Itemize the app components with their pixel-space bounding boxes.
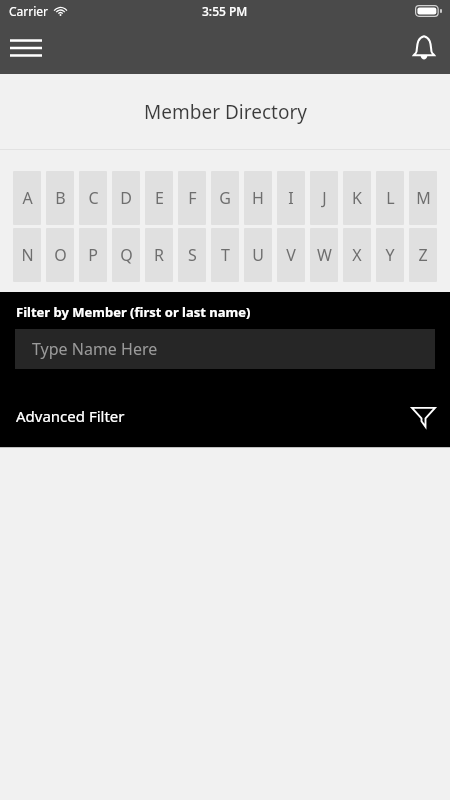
staticText: N — [21, 244, 34, 266]
staticText: O — [54, 244, 67, 266]
button[interactable]: I — [277, 171, 305, 225]
button[interactable]: J — [310, 171, 338, 225]
button[interactable]: G — [211, 171, 239, 225]
button[interactable]: Y — [376, 228, 404, 282]
staticText: H — [252, 187, 264, 209]
staticText: A — [22, 187, 33, 209]
button[interactable]: O — [46, 228, 74, 282]
button[interactable]: M — [409, 171, 437, 225]
button[interactable]: C — [79, 171, 107, 225]
staticText: R — [154, 244, 164, 266]
staticText: L — [386, 187, 395, 209]
button[interactable]: Menu — [0, 22, 52, 74]
staticText: Filter by Member (first or last name) — [16, 303, 251, 321]
button[interactable]: H — [244, 171, 272, 225]
button[interactable]: X — [343, 228, 371, 282]
staticText: E — [155, 187, 164, 209]
staticText: P — [88, 244, 98, 266]
staticText: Z — [418, 244, 428, 266]
staticText: 3:55 PM — [202, 3, 248, 19]
staticText: G — [219, 187, 231, 209]
button[interactable]: U — [244, 228, 272, 282]
button[interactable]: F — [178, 171, 206, 225]
button[interactable]: N — [13, 228, 41, 282]
button[interactable]: L — [376, 171, 404, 225]
button[interactable]: K — [343, 171, 371, 225]
button[interactable]: P — [79, 228, 107, 282]
button[interactable]: Q — [112, 228, 140, 282]
staticText: Member Directory — [144, 99, 307, 125]
staticText: S — [188, 244, 197, 266]
button[interactable]: Notifications — [398, 22, 450, 74]
staticText: K — [352, 187, 362, 209]
staticText: V — [286, 244, 296, 266]
button[interactable]: T — [211, 228, 239, 282]
staticText: W — [317, 244, 332, 266]
button[interactable]: B — [46, 171, 74, 225]
button[interactable]: S — [178, 228, 206, 282]
staticText: F — [188, 187, 197, 209]
staticText: C — [88, 187, 99, 209]
staticText: B — [55, 187, 66, 209]
button[interactable]: Type Name Here — [15, 329, 435, 369]
button[interactable]: R — [145, 228, 173, 282]
staticText: U — [252, 244, 264, 266]
staticText: Carrier — [9, 3, 49, 19]
button[interactable]: W — [310, 228, 338, 282]
staticText: Type Name Here — [32, 338, 158, 360]
staticText: T — [221, 244, 230, 266]
button[interactable]: Z — [409, 228, 437, 282]
staticText: Q — [120, 244, 133, 266]
button[interactable]: Advanced Filter — [0, 395, 450, 437]
button[interactable]: V — [277, 228, 305, 282]
staticText: J — [322, 187, 327, 209]
button[interactable]: E — [145, 171, 173, 225]
staticText: D — [120, 187, 132, 209]
staticText: X — [352, 244, 362, 266]
staticText: Advanced Filter — [16, 406, 125, 426]
staticText: Y — [385, 244, 395, 266]
button[interactable]: D — [112, 171, 140, 225]
staticText: M — [416, 187, 431, 209]
staticText: I — [288, 187, 294, 209]
button[interactable]: A — [13, 171, 41, 225]
